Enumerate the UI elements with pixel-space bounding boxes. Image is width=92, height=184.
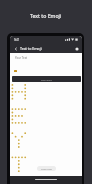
button[interactable]: CONVERT <box>12 76 81 82</box>
staticText: Copy Text <box>41 167 52 170</box>
staticText: Text to Emoji <box>30 12 62 19</box>
staticText: Your Text <box>15 56 28 60</box>
staticText: CONVERT <box>41 78 52 81</box>
button[interactable]: Back <box>12 45 19 52</box>
button[interactable]: Copy Text <box>37 166 56 171</box>
staticText: 9:41 <box>14 38 20 42</box>
staticText: Text to Emoji <box>20 46 42 51</box>
button[interactable]: Info <box>73 45 80 52</box>
